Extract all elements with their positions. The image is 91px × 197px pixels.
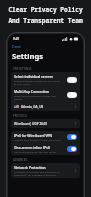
staticText: Support IPv6 protocol inside VPN tunnel: [14, 138, 62, 141]
button[interactable]: Done: [8, 43, 83, 50]
staticText: Network Protection: [14, 165, 46, 169]
button[interactable]: IPv6 for WireGuard VPN: [11, 131, 80, 143]
button[interactable]: WireGuard, UDP 2049: [11, 119, 80, 128]
button[interactable]: Toggle: [67, 134, 77, 140]
staticText: Atlanta, GA, US: [21, 105, 74, 109]
other: Open: [74, 168, 77, 173]
other: Open: [74, 121, 77, 126]
button[interactable]: Toggle: [67, 92, 77, 98]
button[interactable]: Select individual servers: [11, 72, 80, 87]
staticText: Clear Privacy Policy: [0, 5, 91, 13]
staticText: ADVANCED: [13, 158, 28, 162]
button[interactable]: Network Protection: [11, 163, 80, 178]
staticText: IPv6 for WireGuard VPN: [14, 133, 53, 137]
staticText: Settings: [12, 51, 44, 61]
staticText: Configure your traffic and behaviour of …: [14, 170, 60, 176]
other: Country flag: [14, 105, 19, 108]
staticText: Enable manually connecting to a server o…: [14, 79, 61, 85]
button[interactable]: Multi-Hop Connection: [11, 87, 80, 102]
staticText: Multi-Hop Connection: [14, 89, 50, 93]
staticText: PROTOCOL: [13, 114, 28, 118]
other: Open: [74, 104, 77, 109]
staticText: WireGuard, UDP 2049: [14, 122, 74, 126]
staticText: VPN SETTINGS: [13, 67, 32, 71]
button[interactable]: One-screen inline IPv6: [11, 143, 80, 155]
staticText: Use IPv6 address for the VPN server: [14, 150, 57, 153]
staticText: Route your connection through two server…: [14, 94, 56, 100]
staticText: Select individual servers: [14, 74, 53, 78]
button[interactable]: Toggle: [67, 146, 77, 152]
staticText: 9:41: [13, 37, 20, 41]
button[interactable]: Toggle: [67, 77, 77, 83]
staticText: One-screen inline IPv6: [14, 145, 50, 149]
staticText: Done: [12, 44, 22, 49]
staticText: And Transparent Team: [0, 16, 91, 24]
button[interactable]: Country flag: [11, 102, 80, 111]
